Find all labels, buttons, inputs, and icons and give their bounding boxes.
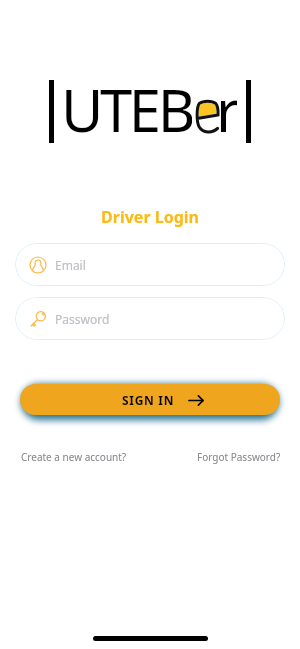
button[interactable]: Email [15,243,285,286]
button[interactable]: Forgot Password? [197,450,281,464]
staticText: SIGN IN [122,392,175,408]
button[interactable]: Password [15,297,285,340]
staticText: r [216,70,237,133]
staticText: Email [55,257,86,273]
staticText: Driver Login [0,206,300,228]
staticText: Password [55,311,110,327]
button[interactable]: Create a new account? [21,450,127,464]
button[interactable]: SIGN IN [20,384,280,415]
staticText: UTEB [61,70,192,133]
